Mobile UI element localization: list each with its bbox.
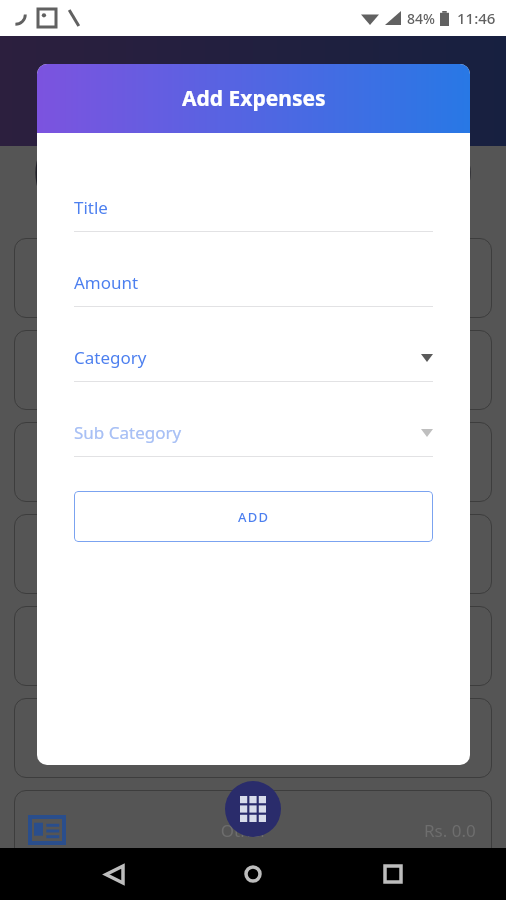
button[interactable]: Amount (74, 271, 433, 307)
staticText: 11:46 (457, 8, 496, 28)
button[interactable] (14, 422, 492, 502)
button[interactable]: Title (74, 196, 433, 232)
staticText: Sub Category (74, 421, 421, 444)
button[interactable]: Open categories grid (225, 781, 281, 837)
button[interactable] (14, 330, 492, 410)
button[interactable] (14, 698, 492, 778)
button[interactable]: ADD (74, 491, 433, 542)
button[interactable] (14, 238, 492, 318)
staticText: ADD (238, 508, 270, 526)
button[interactable]: Back (88, 848, 140, 900)
button[interactable]: Recent apps (367, 848, 419, 900)
staticText: Other (64, 819, 424, 842)
button[interactable]: Category (74, 346, 433, 382)
staticText: Title (74, 196, 433, 219)
staticText: Rs. 0.0 (424, 819, 476, 842)
staticText: Category (74, 346, 421, 369)
button[interactable] (14, 514, 492, 594)
button[interactable]: Other (14, 790, 492, 870)
button[interactable]: Home (227, 848, 279, 900)
button[interactable]: Sub Category (74, 421, 433, 457)
staticText: Amount (74, 271, 433, 294)
staticText: Add Expenses (182, 84, 326, 113)
staticText: 84% (407, 9, 435, 28)
button[interactable] (14, 606, 492, 686)
